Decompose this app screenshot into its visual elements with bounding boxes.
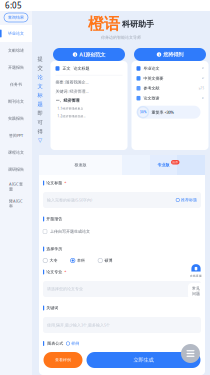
staticText: 6:05 [5, 0, 22, 11]
staticText: 立即生成 [133, 357, 153, 363]
button[interactable]: 极速版 [39, 155, 122, 175]
staticText: 正文 [62, 66, 70, 71]
staticText: 推荐 [172, 161, 178, 164]
staticText: 查看样例 [55, 357, 71, 362]
button[interactable]: 答辩PPT [0, 127, 32, 144]
staticText: 参考文献 [143, 86, 159, 91]
button[interactable]: 本科 [70, 258, 85, 263]
staticText: 毕业论文 [143, 66, 159, 71]
staticText: 标 [37, 92, 42, 98]
staticText: 答辩PPT [9, 133, 23, 138]
staticText: 实践报告 [8, 116, 24, 121]
button[interactable]: 毕业论文 [0, 25, 32, 42]
staticText: 常见 [192, 286, 200, 291]
staticText: 关键词 [46, 305, 58, 310]
staticText: 提 [37, 56, 42, 62]
staticText: i [158, 52, 159, 57]
staticText: ▽ [38, 137, 42, 143]
button[interactable]: AIGC查重 [0, 178, 32, 195]
staticText: 论文标题 [73, 66, 89, 71]
staticText: 你身边的智能论文导师 [101, 35, 141, 40]
staticText: 输入完整的标题(5-50字内) [47, 197, 92, 203]
staticText: 论文标题 [46, 180, 62, 185]
staticText: 您将得到 [163, 51, 183, 58]
button[interactable]: 文献综述 [0, 42, 32, 59]
button[interactable]: 期刊论文 [0, 93, 32, 110]
staticText: 论 [37, 74, 42, 80]
staticText: x1 [201, 96, 204, 100]
staticText: 交 [37, 65, 42, 71]
staticText: 调研报告 [8, 167, 24, 172]
staticText: 重复率 <30% [151, 109, 173, 115]
staticText: 使用,隔开,最少输入3个,最多输入5个 [47, 322, 110, 328]
staticText: * [64, 269, 66, 275]
staticText: 专业版 [157, 162, 169, 167]
staticText: ≥15 [198, 86, 204, 90]
button[interactable]: 专业版 [122, 155, 205, 175]
staticText: 科研助手 [122, 19, 154, 29]
staticText: 题 [37, 101, 42, 108]
button[interactable]: 调研报告 [0, 161, 32, 178]
button[interactable]: 开题报告 [0, 59, 32, 76]
staticText: 硕博 [104, 258, 112, 263]
staticText: 毕业论文 [8, 31, 24, 36]
staticText: 可 [37, 119, 42, 126]
staticText: i [74, 52, 75, 57]
staticText: 关键词: 经济管理… [55, 89, 88, 94]
staticText: x1 [201, 67, 204, 70]
staticText: 选择学历 [46, 246, 62, 251]
staticText: 1.1经济管理的意义 [55, 107, 83, 110]
staticText: 极速版 [74, 162, 86, 167]
staticText: 上传自写开题生成论文 [50, 229, 90, 234]
staticText: 课程论文 [8, 150, 24, 155]
staticText: 文 [37, 83, 42, 89]
staticText: 在线客服 [190, 274, 202, 277]
staticText: 开题报告 [46, 216, 62, 221]
button[interactable]: 课程论文 [0, 144, 32, 161]
staticText: AIGC查重 [9, 181, 23, 192]
staticText: 30% [140, 110, 146, 114]
staticText: 本科 [77, 258, 85, 263]
staticText: 摘要: 随着我国企… [55, 79, 88, 85]
button[interactable]: 推荐标题 [176, 197, 197, 202]
staticText: 任务书 [10, 82, 22, 87]
staticText: 问题 [192, 291, 200, 296]
staticText: 图表公式 [47, 341, 63, 346]
button[interactable]: 大专 [43, 258, 57, 263]
staticText: 橙语 [88, 14, 120, 34]
staticText: x2 [201, 77, 204, 80]
button[interactable]: 实践报告 [0, 110, 32, 127]
button[interactable]: 在线客服 [188, 261, 204, 280]
staticText: 样例 [71, 341, 79, 346]
staticText: 降AIGC率 [9, 198, 23, 209]
button[interactable]: 常见 [188, 283, 204, 299]
staticText: 论文致谢 [143, 96, 159, 101]
staticText: 文献综述 [8, 48, 24, 53]
button[interactable]: 菜单 [181, 344, 200, 363]
button[interactable]: 任务书 [0, 76, 32, 93]
staticText: 得 [37, 128, 42, 135]
staticText: 期刊论文 [8, 99, 24, 104]
staticText: 推荐标题 [181, 197, 197, 202]
staticText: AI原创范文 [79, 51, 105, 58]
button[interactable]: 查询结果 [4, 13, 28, 22]
staticText: 开题报告 [8, 65, 24, 70]
staticText: 查询结果 [8, 15, 24, 20]
staticText: 大专 [49, 258, 57, 263]
button[interactable]: 查看样例 [43, 352, 82, 368]
staticText: 中英文摘要 [143, 76, 163, 81]
staticText: 1.2经济管理的目的… [55, 114, 85, 118]
staticText: * [64, 180, 66, 186]
staticText: 论文专业 [46, 269, 62, 274]
button[interactable]: 硕博 [98, 258, 112, 263]
staticText: 即 [37, 110, 42, 117]
staticText: 请选择您的论文专业 [47, 286, 83, 291]
button[interactable]: 立即生成 [86, 352, 200, 368]
staticText: 一、经济管理 [55, 98, 79, 103]
button[interactable]: 降AIGC率 [0, 195, 32, 212]
